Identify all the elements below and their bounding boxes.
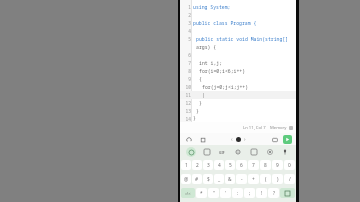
staticText: 9 — [188, 76, 191, 82]
button[interactable]: 0 — [284, 160, 295, 170]
button[interactable]: : — [232, 188, 243, 198]
staticText: 6 — [188, 52, 191, 58]
button[interactable]: Console — [270, 135, 279, 144]
staticText: 1 — [185, 162, 188, 169]
staticText: 2 — [196, 162, 199, 169]
button[interactable]: 8 — [260, 160, 271, 170]
staticText: $ — [207, 176, 210, 183]
staticText: # — [195, 176, 199, 183]
button[interactable]: / — [284, 174, 295, 184]
button[interactable]: Run — [283, 135, 292, 144]
button[interactable]: @ — [181, 174, 191, 184]
staticText: + — [252, 176, 255, 183]
staticText: 0 — [288, 162, 291, 169]
staticText: int i,j; — [199, 60, 223, 67]
staticText: & — [228, 176, 232, 183]
staticText: 7 — [252, 162, 255, 169]
button[interactable]: ? — [268, 188, 279, 198]
button[interactable]: ( — [260, 174, 271, 184]
button[interactable]: ' — [220, 188, 231, 198]
staticText: * — [200, 190, 203, 196]
staticText: ( — [265, 176, 267, 183]
button[interactable]: # — [192, 174, 202, 184]
staticText: 7 — [188, 60, 191, 66]
button[interactable]: Undo — [184, 135, 193, 144]
staticText: 14 — [185, 116, 191, 122]
staticText: Memory — [270, 125, 287, 131]
staticText: 6 — [240, 162, 243, 169]
staticText: public class Program { — [193, 20, 257, 27]
button[interactable]: _ — [214, 174, 224, 184]
staticText: 4 — [218, 162, 221, 169]
staticText: } — [199, 100, 202, 107]
staticText: _ — [218, 176, 221, 183]
button[interactable]: 6 — [236, 160, 247, 170]
staticText: 8 — [264, 162, 267, 169]
button[interactable]: $ — [203, 174, 213, 184]
button[interactable]: ; — [244, 188, 255, 198]
staticText: 13 — [185, 108, 191, 114]
button[interactable]: Backspace — [280, 188, 295, 198]
button[interactable]: 5 — [225, 160, 235, 170]
staticText: ‹ — [231, 136, 233, 143]
staticText: : — [237, 190, 239, 196]
button[interactable]: Translate — [217, 147, 227, 157]
staticText: 4 — [188, 28, 191, 34]
button[interactable]: ! — [256, 188, 267, 198]
button[interactable]: Clipboard — [249, 147, 259, 157]
staticText: public static void Main(string[] — [196, 36, 289, 43]
staticText: =\< — [185, 191, 191, 196]
button[interactable]: Voice input — [280, 147, 290, 157]
button[interactable]: - — [236, 174, 247, 184]
staticText: { — [199, 76, 202, 83]
staticText: Ln 11, Col 7 — [243, 125, 266, 131]
button[interactable]: Emoji keyboard — [186, 147, 196, 157]
staticText: 12 — [185, 100, 191, 106]
button[interactable]: " — [208, 188, 219, 198]
button[interactable]: =\< — [181, 188, 195, 198]
staticText: 8 — [188, 68, 191, 74]
staticText: 2 — [188, 12, 191, 18]
button[interactable]: GIF — [202, 147, 212, 157]
staticText: args) { — [196, 44, 217, 51]
button[interactable]: * — [196, 188, 207, 198]
button[interactable]: 7 — [248, 160, 259, 170]
staticText: 3 — [188, 20, 191, 26]
staticText: ) — [277, 176, 279, 183]
staticText: | — [202, 92, 205, 99]
staticText: 5 — [188, 36, 191, 42]
button[interactable]: 4 — [214, 160, 224, 170]
button[interactable]: & — [225, 174, 235, 184]
staticText: 10 — [185, 84, 191, 90]
button[interactable]: 2 — [192, 160, 202, 170]
staticText: @ — [184, 176, 189, 183]
button[interactable]: 3 — [203, 160, 213, 170]
button[interactable]: + — [248, 174, 259, 184]
staticText: using System; — [193, 4, 231, 11]
staticText: " — [213, 190, 215, 196]
staticText: } — [196, 108, 199, 115]
staticText: 9 — [276, 162, 279, 169]
staticText: ; — [249, 190, 251, 196]
button[interactable]: 1 — [181, 160, 191, 170]
staticText: 5 — [229, 162, 232, 169]
staticText: ! — [261, 190, 263, 196]
button[interactable]: Sticker — [265, 147, 275, 157]
staticText: } — [193, 115, 196, 122]
staticText: 11 — [185, 92, 191, 98]
button[interactable]: Settings — [233, 147, 243, 157]
staticText: › — [244, 136, 246, 143]
staticText: 3 — [207, 162, 210, 169]
button[interactable]: Copy — [198, 135, 207, 144]
button[interactable]: 9 — [272, 160, 283, 170]
staticText: for(i=0;i<6;i++) — [199, 68, 246, 75]
staticText: GIF — [219, 150, 225, 155]
staticText: - — [241, 176, 243, 183]
staticText: ' — [225, 190, 227, 196]
staticText: ? — [273, 190, 275, 196]
button[interactable]: ) — [272, 174, 283, 184]
staticText: for(j=0;j<i;j++) — [202, 84, 249, 91]
staticText: 1 — [188, 4, 191, 10]
staticText: / — [289, 176, 291, 183]
